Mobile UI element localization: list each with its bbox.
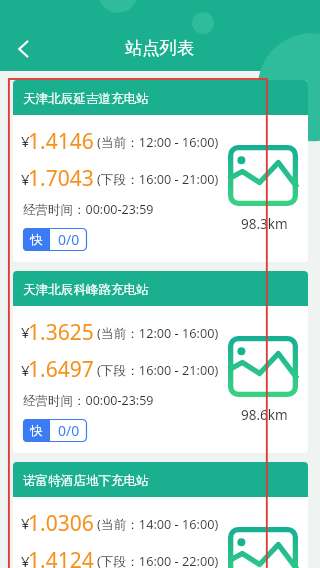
staticText: (当前：12:00 - 16:00) [97, 133, 219, 150]
button[interactable]: 天津北辰科峰路充电站 [13, 271, 308, 453]
staticText: (下段：16:00 - 21:00) [97, 170, 219, 187]
button[interactable]: 快 [23, 228, 87, 251]
staticText: 0/0 [58, 421, 80, 440]
button[interactable]: 快 [23, 419, 87, 442]
staticText: 1.7043 [28, 164, 94, 193]
staticText: 0/0 [58, 230, 80, 249]
staticText: 快 [30, 423, 43, 438]
button[interactable]: Back [0, 27, 44, 71]
staticText: ¥ [21, 513, 30, 533]
staticText: (下段：16:00 - 21:00) [97, 361, 219, 378]
staticText: 站点列表 [125, 37, 195, 59]
staticText: 天津北辰延吉道充电站 [23, 91, 149, 107]
staticText: 1.4124 [28, 546, 94, 568]
staticText: ¥ [21, 322, 30, 342]
staticText: ¥ [21, 169, 30, 189]
staticText: 1.3625 [28, 318, 94, 347]
staticText: ¥ [21, 360, 30, 380]
staticText: ¥ [21, 551, 30, 568]
staticText: 1.4146 [28, 127, 94, 156]
staticText: 快 [30, 232, 43, 247]
staticText: 98.3km [241, 215, 288, 233]
button[interactable]: 天津北辰延吉道充电站 [13, 80, 308, 262]
staticText: 1.0306 [28, 509, 94, 538]
staticText: ¥ [21, 131, 30, 151]
button[interactable]: 诺富特酒店地下充电站 [13, 462, 308, 568]
staticText: 经营时间：00:00-23:59 [23, 392, 154, 409]
staticText: (当前：14:00 - 16:00) [97, 515, 219, 532]
staticText: 经营时间：00:00-23:59 [23, 201, 154, 218]
staticText: (当前：12:00 - 16:00) [97, 324, 219, 341]
staticText: 诺富特酒店地下充电站 [23, 473, 149, 489]
staticText: 天津北辰科峰路充电站 [23, 282, 149, 298]
staticText: 1.6497 [28, 355, 94, 384]
staticText: (下段：16:00 - 22:00) [97, 552, 219, 568]
staticText: 98.6km [241, 406, 288, 424]
